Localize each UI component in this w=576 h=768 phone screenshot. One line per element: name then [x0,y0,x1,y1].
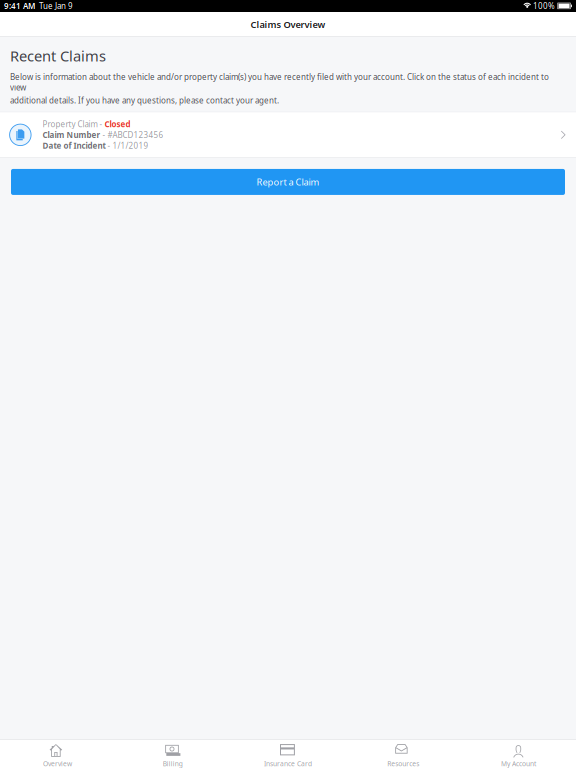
staticText: Date of Incident [43,140,106,151]
staticText: 100% [533,1,555,11]
staticText: Resources [387,759,419,768]
staticText: - 1/1/2019 [106,140,149,151]
staticText: 9:41 AM [4,1,35,11]
button[interactable]: Overview [0,739,115,768]
staticText: Tue Jan 9 [39,1,73,11]
staticText: Claim Number [43,129,101,140]
staticText: Property Claim - [43,119,105,129]
button[interactable]: Billing [115,739,230,768]
button[interactable]: Resources [346,739,461,768]
staticText: Claims Overview [250,18,325,31]
staticText: Billing [163,759,183,768]
staticText: - #ABCD123456 [101,129,164,140]
button[interactable]: My Account [461,739,576,768]
staticText: additional details. If you have any ques… [10,95,279,106]
button[interactable]: Insurance Card [230,739,346,768]
staticText: Report a Claim [256,176,319,188]
staticText: Below is information about the vehicle a… [10,71,549,93]
staticText: Insurance Card [264,759,312,768]
staticText: Overview [43,759,72,768]
button[interactable]: Report a Claim [11,169,565,195]
staticText: My Account [501,759,536,768]
staticText: Closed [105,119,131,129]
button[interactable]: Property Claim - [0,112,576,157]
staticText: Recent Claims [10,46,106,65]
